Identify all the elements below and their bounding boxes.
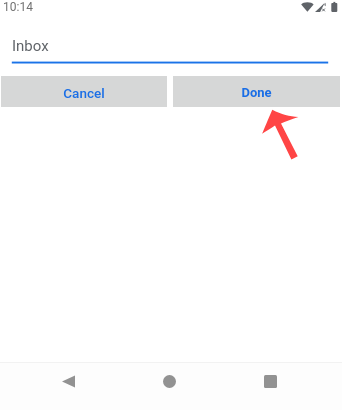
staticText: 10:14 xyxy=(3,0,33,14)
button[interactable]: Home xyxy=(145,366,193,397)
staticText: Done xyxy=(241,85,272,100)
button[interactable]: Recents xyxy=(246,366,294,397)
button[interactable]: Cancel xyxy=(1,76,167,107)
button[interactable]: Done xyxy=(173,76,340,107)
staticText: Inbox xyxy=(12,37,49,55)
staticText: Cancel xyxy=(63,85,105,101)
button[interactable]: Back xyxy=(44,366,92,397)
